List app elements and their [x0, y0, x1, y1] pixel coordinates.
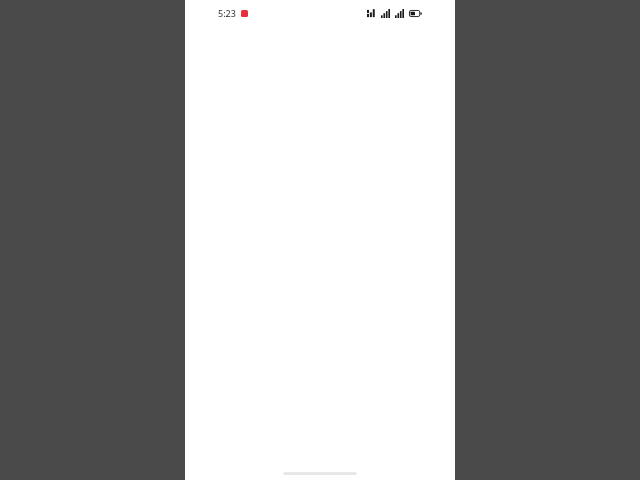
other: Mobile data	[367, 9, 376, 18]
other: Battery	[409, 10, 422, 17]
other: Notification	[241, 10, 248, 17]
other: Cellular signal	[395, 9, 404, 18]
staticText: 5:23	[218, 7, 236, 19]
other: Cellular signal	[381, 9, 390, 18]
